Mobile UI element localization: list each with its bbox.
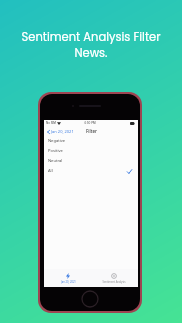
staticText: 4:50 PM <box>84 121 96 125</box>
staticText: Sentiment Analysis <box>102 280 126 284</box>
button[interactable]: All <box>44 166 138 176</box>
button[interactable]: Negative <box>44 136 138 146</box>
staticText: No SIM <box>46 121 56 125</box>
staticText: Positive <box>48 148 63 154</box>
staticText: All <box>48 168 53 174</box>
staticText: Filter <box>86 128 97 134</box>
staticText: Jan 20, 2021 <box>61 280 76 284</box>
staticText: Sentiment Analysis Filter News. <box>8 29 174 61</box>
staticText: Neutral <box>48 158 63 164</box>
button[interactable]: Neutral <box>44 156 138 166</box>
button[interactable]: Jan 20, 2021 <box>44 127 77 136</box>
staticText: Jan 20, 2021 <box>51 129 74 134</box>
staticText: Negative <box>48 138 66 144</box>
button[interactable]: Positive <box>44 146 138 156</box>
button[interactable]: Jan 20, 2021 <box>45 269 91 287</box>
button[interactable]: Sentiment Analysis <box>91 269 137 287</box>
